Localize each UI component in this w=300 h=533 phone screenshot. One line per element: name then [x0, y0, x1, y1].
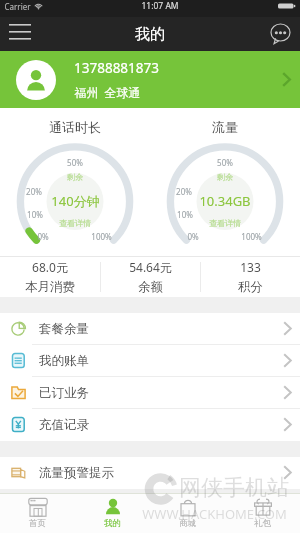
- button[interactable]: 商城: [150, 494, 225, 533]
- button[interactable]: 流量预警提示: [0, 457, 300, 488]
- button[interactable]: 我的: [75, 494, 150, 533]
- button[interactable]: 已订业务: [0, 377, 300, 408]
- staticText: 套餐余量: [39, 321, 89, 337]
- button[interactable]: 68.0元: [0, 257, 100, 297]
- staticText: 我的: [104, 518, 121, 529]
- staticText: 积分: [238, 279, 263, 295]
- staticText: 查看详情: [209, 218, 241, 228]
- staticText: 68.0元: [32, 259, 68, 275]
- staticText: 54.64元: [129, 259, 172, 275]
- staticText: 11:07 AM: [141, 0, 179, 12]
- staticText: 133: [240, 259, 261, 275]
- staticText: 已订业务: [39, 385, 89, 401]
- staticText: 剩余: [67, 172, 83, 182]
- staticText: 10%: [27, 209, 43, 220]
- button[interactable]: Menu: [0, 17, 40, 51]
- staticText: 本月消费: [25, 279, 75, 295]
- staticText: 50%: [67, 157, 83, 168]
- staticText: 通话时长: [49, 119, 101, 135]
- staticText: 0%: [187, 231, 199, 242]
- staticText: 140分钟: [51, 192, 100, 210]
- staticText: 0%: [37, 231, 49, 242]
- staticText: Carrier: [4, 1, 31, 12]
- staticText: 10.34GB: [199, 192, 251, 210]
- staticText: 100%: [91, 231, 112, 242]
- staticText: 13788881873: [74, 59, 159, 77]
- button[interactable]: 13788881873: [0, 51, 300, 108]
- staticText: 福州 全球通: [74, 84, 141, 100]
- staticText: 我的账单: [39, 353, 89, 369]
- staticText: 10%: [177, 209, 193, 220]
- staticText: 流量: [212, 119, 238, 135]
- button[interactable]: 剩余: [196, 172, 254, 230]
- staticText: 充值记录: [39, 417, 89, 433]
- staticText: 商城: [179, 518, 196, 529]
- staticText: 剩余: [217, 172, 233, 182]
- button[interactable]: 套餐余量: [0, 313, 300, 344]
- button[interactable]: 我的账单: [0, 345, 300, 376]
- button[interactable]: 首页: [0, 494, 75, 533]
- staticText: 100%: [241, 231, 262, 242]
- staticText: WWW.HACKHOME.COM: [142, 505, 287, 523]
- staticText: 网侠手机站: [179, 474, 289, 502]
- staticText: 余额: [138, 279, 163, 295]
- staticText: 首页: [29, 518, 46, 529]
- button[interactable]: 133: [201, 257, 300, 297]
- button[interactable]: 充值记录: [0, 409, 300, 440]
- button[interactable]: 礼包: [225, 494, 300, 533]
- staticText: 20%: [176, 186, 192, 197]
- button[interactable]: Messages: [260, 17, 300, 51]
- staticText: 礼包: [254, 518, 271, 529]
- button[interactable]: 54.64元: [101, 257, 200, 297]
- staticText: 我的: [135, 25, 165, 44]
- staticText: 查看详情: [59, 218, 91, 228]
- staticText: 20%: [26, 186, 42, 197]
- staticText: 50%: [217, 157, 233, 168]
- staticText: 流量预警提示: [39, 465, 114, 481]
- button[interactable]: 剩余: [46, 172, 104, 230]
